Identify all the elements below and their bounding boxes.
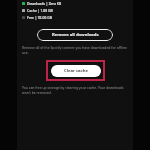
button[interactable]: Remove all downloads (37, 29, 113, 41)
staticText: Remove all of the Spotify content you ha… (22, 45, 128, 55)
staticText: Clear cache (64, 68, 88, 74)
staticText: Downloads | Zero KB (27, 1, 62, 6)
staticText: Cache | 1.88 GB (27, 8, 53, 13)
button[interactable]: Clear cache (51, 65, 101, 77)
staticText: Remove all downloads (52, 32, 99, 38)
staticText: You can free up storage by clearing your… (22, 85, 128, 95)
staticText: Free | 92.06 GB (27, 15, 52, 20)
